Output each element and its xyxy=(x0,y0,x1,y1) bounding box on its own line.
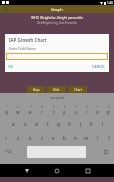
button[interactable]: Shift xyxy=(0,131,12,145)
staticText: 2 xyxy=(17,105,19,109)
button[interactable]: c xyxy=(36,131,48,145)
button[interactable]: 6 xyxy=(59,103,70,117)
staticText: Dot:Weight in kg, Line:Percentile xyxy=(0,21,114,25)
staticText: wsxgmail xyxy=(50,96,65,100)
button[interactable]: 5 xyxy=(48,103,59,117)
button[interactable] xyxy=(6,53,108,60)
button[interactable]: OK xyxy=(8,64,13,69)
staticText: ! xyxy=(97,135,99,141)
staticText: d xyxy=(35,121,38,127)
button[interactable]: f xyxy=(42,117,53,131)
staticText: v xyxy=(52,135,55,141)
staticText: w xyxy=(16,109,20,115)
staticText: e xyxy=(29,109,32,115)
button[interactable]: Chart xyxy=(68,86,87,93)
button[interactable]: v xyxy=(48,131,59,145)
staticText: 7 xyxy=(75,105,77,109)
staticText: . xyxy=(91,150,93,155)
button[interactable]: 4 xyxy=(36,103,48,117)
staticText: f xyxy=(47,121,49,127)
button[interactable]: Emoji xyxy=(97,145,114,159)
button[interactable]: Home xyxy=(53,167,61,175)
staticText: 0 xyxy=(108,105,110,109)
staticText: k xyxy=(90,121,93,127)
button[interactable]: b xyxy=(59,131,70,145)
staticText: 6 xyxy=(64,105,66,109)
staticText: 4 xyxy=(41,105,43,109)
staticText: p xyxy=(107,109,110,115)
staticText: CANCEL xyxy=(92,64,106,69)
button[interactable]: n xyxy=(70,131,81,145)
staticText: Graph xyxy=(51,7,63,12)
staticText: t xyxy=(53,109,55,115)
staticText: o xyxy=(96,109,99,115)
button[interactable]: l xyxy=(97,117,108,131)
staticText: , xyxy=(20,150,22,155)
staticText: c xyxy=(41,135,44,141)
button[interactable]: 7 xyxy=(70,103,81,117)
staticText: Girls xyxy=(53,88,60,92)
staticText: ?123 xyxy=(5,150,12,154)
staticText: s xyxy=(24,121,27,127)
button[interactable]: Boys xyxy=(27,86,45,93)
button[interactable]: j xyxy=(75,117,86,131)
staticText: Enter Child Name: xyxy=(9,47,37,51)
staticText: 3 xyxy=(30,105,32,109)
button[interactable]: App icon xyxy=(3,7,8,12)
button[interactable]: Back xyxy=(23,167,31,175)
staticText: r xyxy=(41,109,43,115)
button[interactable]: z xyxy=(12,131,24,145)
staticText: n xyxy=(74,135,77,141)
button[interactable]: 1 xyxy=(0,103,12,117)
button[interactable]: k xyxy=(86,117,97,131)
button[interactable]: x xyxy=(24,131,36,145)
staticText: 9 xyxy=(97,105,99,109)
staticText: j xyxy=(80,121,82,127)
staticText: z xyxy=(17,135,20,141)
staticText: 1 xyxy=(6,105,8,109)
staticText: Chart xyxy=(74,88,82,92)
button[interactable]: 2 xyxy=(12,103,24,117)
staticText: OK xyxy=(8,64,13,69)
staticText: q xyxy=(5,109,8,115)
button[interactable]: ?123 xyxy=(0,145,16,159)
button[interactable]: 0 xyxy=(103,103,114,117)
staticText: IAP Growth Chart xyxy=(9,37,47,43)
button[interactable]: d xyxy=(31,117,42,131)
button[interactable]: 9 xyxy=(92,103,103,117)
button[interactable]: m xyxy=(81,131,92,145)
button[interactable]: a xyxy=(7,117,19,131)
staticText: 5 xyxy=(53,105,55,109)
button[interactable]: 8 xyxy=(81,103,92,117)
button[interactable]: h xyxy=(64,117,75,131)
staticText: x xyxy=(29,135,32,141)
staticText: Boys xyxy=(33,88,40,92)
staticText: i xyxy=(86,109,88,115)
staticText: h xyxy=(68,121,71,127)
button[interactable]: 3 xyxy=(24,103,36,117)
button[interactable]: Recents xyxy=(84,167,92,175)
button[interactable]: s xyxy=(19,117,31,131)
staticText: g xyxy=(57,121,60,127)
staticText: l xyxy=(102,121,104,127)
staticText: u xyxy=(74,109,77,115)
staticText: 8 xyxy=(86,105,88,109)
button[interactable]: ? xyxy=(103,131,114,145)
button[interactable]: g xyxy=(53,117,64,131)
button[interactable]: CANCEL xyxy=(92,64,106,69)
staticText: y xyxy=(63,109,66,115)
staticText: ⇧ xyxy=(4,136,8,141)
button[interactable]: Girls xyxy=(47,86,66,93)
staticText: WHO Weight-for-Height percentile xyxy=(0,16,114,20)
staticText: b xyxy=(63,135,66,141)
staticText: 1:46 xyxy=(107,1,113,5)
staticText: m xyxy=(84,135,89,141)
button[interactable]: ! xyxy=(92,131,103,145)
staticText: a xyxy=(12,121,15,127)
staticText: ? xyxy=(108,135,110,141)
